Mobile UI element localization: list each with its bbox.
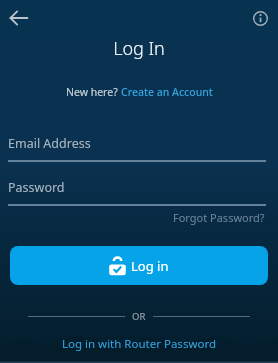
- button[interactable]: Create an Account: [121, 85, 213, 99]
- staticText: Log In: [0, 36, 278, 61]
- staticText: OR: [132, 310, 146, 323]
- staticText: New here?: [66, 85, 121, 99]
- staticText: Email Address: [8, 135, 91, 152]
- button[interactable]: Forgot Password?: [173, 210, 265, 225]
- button[interactable]: Log in with Router Password: [62, 336, 216, 352]
- button[interactable]: Log in: [10, 246, 268, 285]
- button[interactable]: [0, 0, 38, 36]
- button[interactable]: [242, 0, 278, 36]
- staticText: Log in: [131, 257, 169, 275]
- staticText: Password: [8, 179, 65, 196]
